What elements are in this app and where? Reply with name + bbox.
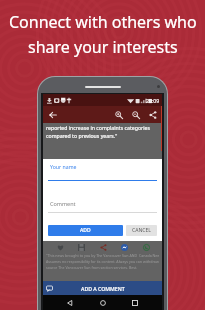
button[interactable]: Back <box>64 297 76 309</box>
staticText: Comment <box>50 200 76 207</box>
staticText: Assumes no responsibility for its conten… <box>46 259 159 264</box>
staticText: ADD A COMMENT <box>81 285 125 292</box>
button[interactable]: Save <box>76 242 86 252</box>
staticText: CANCEL <box>132 227 151 234</box>
button[interactable]: Recents <box>129 297 141 309</box>
staticText: Your name <box>50 163 77 170</box>
staticText: Connect with others who <box>9 11 197 33</box>
button[interactable]: Home <box>97 297 109 309</box>
staticText: ADD <box>80 227 91 234</box>
button[interactable]: CANCEL <box>126 225 157 236</box>
button[interactable]: Messenger <box>119 242 129 252</box>
button[interactable]: ADD <box>48 225 123 236</box>
button[interactable]: Zoom in <box>113 109 125 121</box>
staticText: reported increase in complaints categori… <box>46 124 150 131</box>
staticText: 20:09 <box>146 97 160 104</box>
button[interactable]: WhatsApp <box>141 242 151 252</box>
button[interactable]: Back <box>46 108 59 121</box>
button[interactable]: Like <box>55 242 65 252</box>
button[interactable]: ADD A COMMENT <box>43 281 162 295</box>
staticText: "This news brought to you by The Vancouv… <box>46 253 159 258</box>
staticText: compared to previous years." <box>46 132 118 139</box>
staticText: source The Vancouver Sun from section se… <box>46 265 138 270</box>
button[interactable]: Zoom out <box>130 109 142 121</box>
staticText: share your interests <box>28 36 178 58</box>
button[interactable]: Share <box>98 242 108 252</box>
button[interactable]: Share <box>147 109 159 121</box>
